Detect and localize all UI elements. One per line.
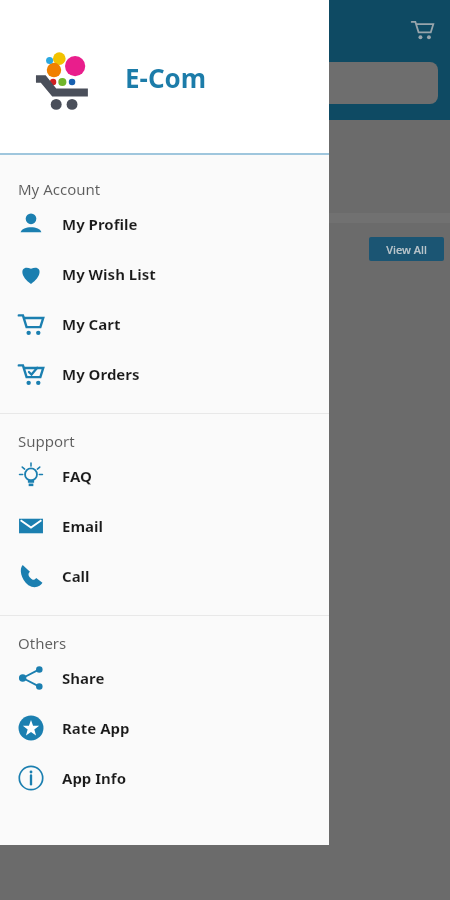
button[interactable]: My Profile (0, 199, 329, 249)
staticText: My Wish List (62, 264, 156, 284)
staticText: My Profile (62, 214, 138, 234)
button[interactable]: Call (0, 551, 329, 601)
staticText: View All (386, 242, 427, 257)
staticText: Email (62, 516, 103, 536)
button[interactable]: FAQ (0, 451, 329, 501)
staticText: Support (18, 431, 75, 451)
staticText: My Account (18, 179, 101, 199)
button[interactable]: Share (0, 653, 329, 703)
staticText: Call (62, 566, 90, 586)
staticText: Others (18, 633, 67, 653)
button[interactable]: My Cart (0, 299, 329, 349)
button[interactable]: My Orders (0, 349, 329, 399)
button[interactable]: Cart (404, 11, 440, 47)
staticText: E-Com (125, 60, 207, 95)
staticText: Share (62, 668, 105, 688)
staticText: FAQ (62, 466, 92, 486)
button[interactable] (16, 62, 438, 104)
button[interactable]: View All (369, 237, 444, 261)
staticText: My Orders (62, 364, 140, 384)
staticText: App Info (62, 768, 127, 788)
button[interactable]: Email (0, 501, 329, 551)
staticText: My Cart (62, 314, 121, 334)
button[interactable]: Rate App (0, 703, 329, 753)
button[interactable]: My Wish List (0, 249, 329, 299)
staticText: Rate App (62, 718, 130, 738)
button[interactable]: App Info (0, 753, 329, 803)
